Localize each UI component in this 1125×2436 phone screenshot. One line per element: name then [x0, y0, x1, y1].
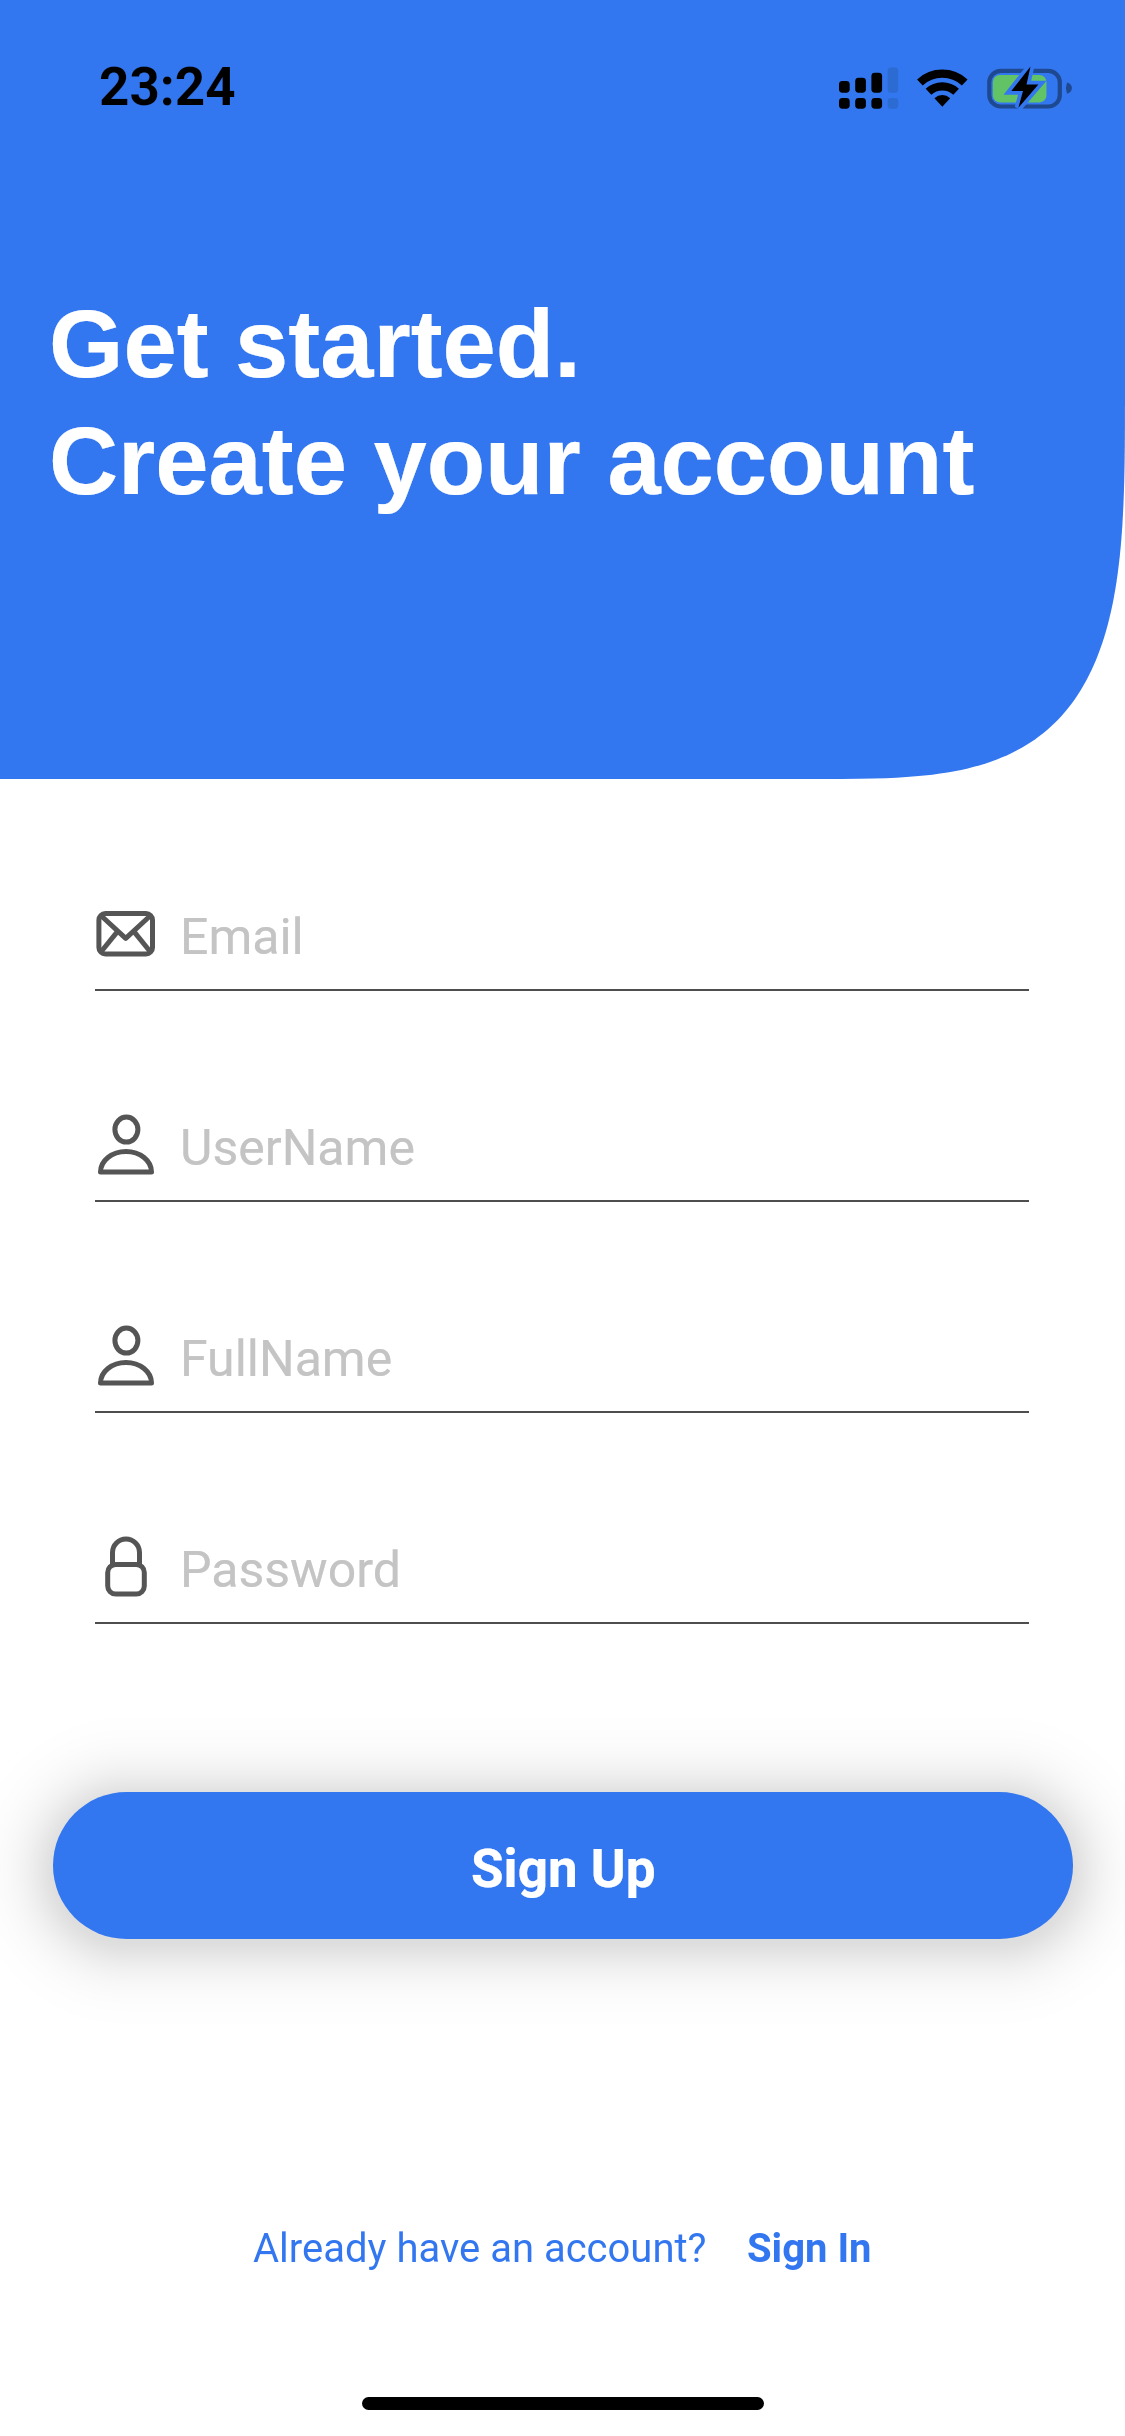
- staticText: 23:24: [99, 56, 236, 118]
- staticText: Password: [180, 1541, 401, 1600]
- staticText: UserName: [180, 1119, 415, 1178]
- staticText: Email: [180, 908, 304, 967]
- staticText: Sign In: [747, 2225, 872, 2272]
- button[interactable]: Sign Up: [53, 1792, 1073, 1939]
- button[interactable]: Password: [95, 1518, 1029, 1624]
- other: Signal, Wi-Fi and battery status: [839, 64, 1079, 114]
- button[interactable]: UserName: [95, 1096, 1029, 1202]
- staticText: Sign Up: [471, 1838, 656, 1900]
- staticText: Already have an account?: [253, 2225, 707, 2272]
- staticText: FullName: [180, 1330, 393, 1389]
- button[interactable]: Already have an account?: [253, 2225, 872, 2272]
- button[interactable]: FullName: [95, 1307, 1029, 1413]
- staticText: Create your account: [49, 407, 975, 514]
- button[interactable]: Email: [95, 885, 1029, 991]
- staticText: Get started.: [49, 290, 581, 397]
